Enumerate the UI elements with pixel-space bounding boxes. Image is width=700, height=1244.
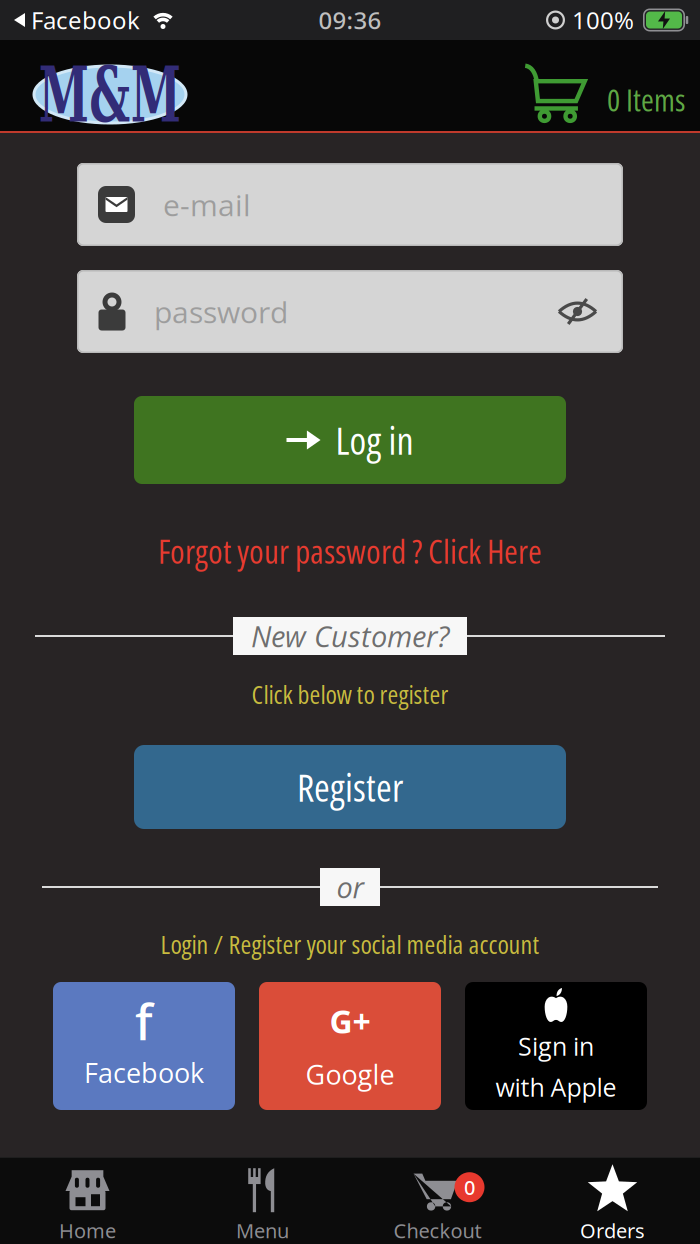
staticText: Google (305, 1056, 394, 1093)
button[interactable]: Orders (525, 1159, 700, 1243)
button[interactable]: Menu (175, 1159, 350, 1243)
staticText: Facebook (31, 4, 140, 36)
staticText: 0 Items (607, 78, 685, 121)
button[interactable]: Back to Facebook (0, 4, 140, 36)
staticText: Checkout (393, 1217, 481, 1244)
button[interactable]: Show password (559, 301, 623, 322)
staticText: G+ (329, 999, 370, 1043)
staticText: password (154, 291, 288, 332)
button[interactable]: 0 (350, 1159, 525, 1243)
staticText: 09:36 (318, 4, 381, 36)
staticText: Menu (236, 1217, 289, 1244)
button[interactable]: Sign in with Apple (465, 982, 647, 1110)
staticText: or (336, 867, 363, 907)
button[interactable]: Forgot your password ? Click Here (158, 535, 542, 567)
button[interactable]: Register (134, 745, 566, 829)
button[interactable]: Cart, 0 Items (530, 54, 700, 116)
staticText: New Customer? (251, 616, 449, 656)
button[interactable]: e-mail (77, 163, 623, 246)
button[interactable]: Log in with Google (259, 982, 441, 1110)
staticText: e-mail (163, 184, 251, 225)
staticText: Click below to register (251, 676, 448, 712)
staticText: 0 (464, 1174, 475, 1200)
staticText: Home (59, 1217, 116, 1244)
staticText: M&M (32, 65, 187, 123)
staticText: with Apple (495, 1070, 616, 1104)
staticText: Login / Register your social media accou… (160, 926, 539, 962)
staticText: f (135, 988, 153, 1054)
staticText: Orders (580, 1217, 645, 1244)
button[interactable]: Log in with Facebook (53, 982, 235, 1110)
staticText: Forgot your password ? Click Here (158, 528, 542, 573)
button[interactable]: Log in (134, 396, 566, 484)
staticText: Log in (335, 414, 413, 466)
staticText: 100% (572, 4, 634, 36)
button[interactable]: Home (0, 1159, 175, 1243)
staticText: Register (297, 761, 403, 813)
staticText: Facebook (84, 1054, 204, 1091)
button[interactable]: password (77, 270, 623, 353)
staticText: Sign in (518, 1029, 594, 1063)
